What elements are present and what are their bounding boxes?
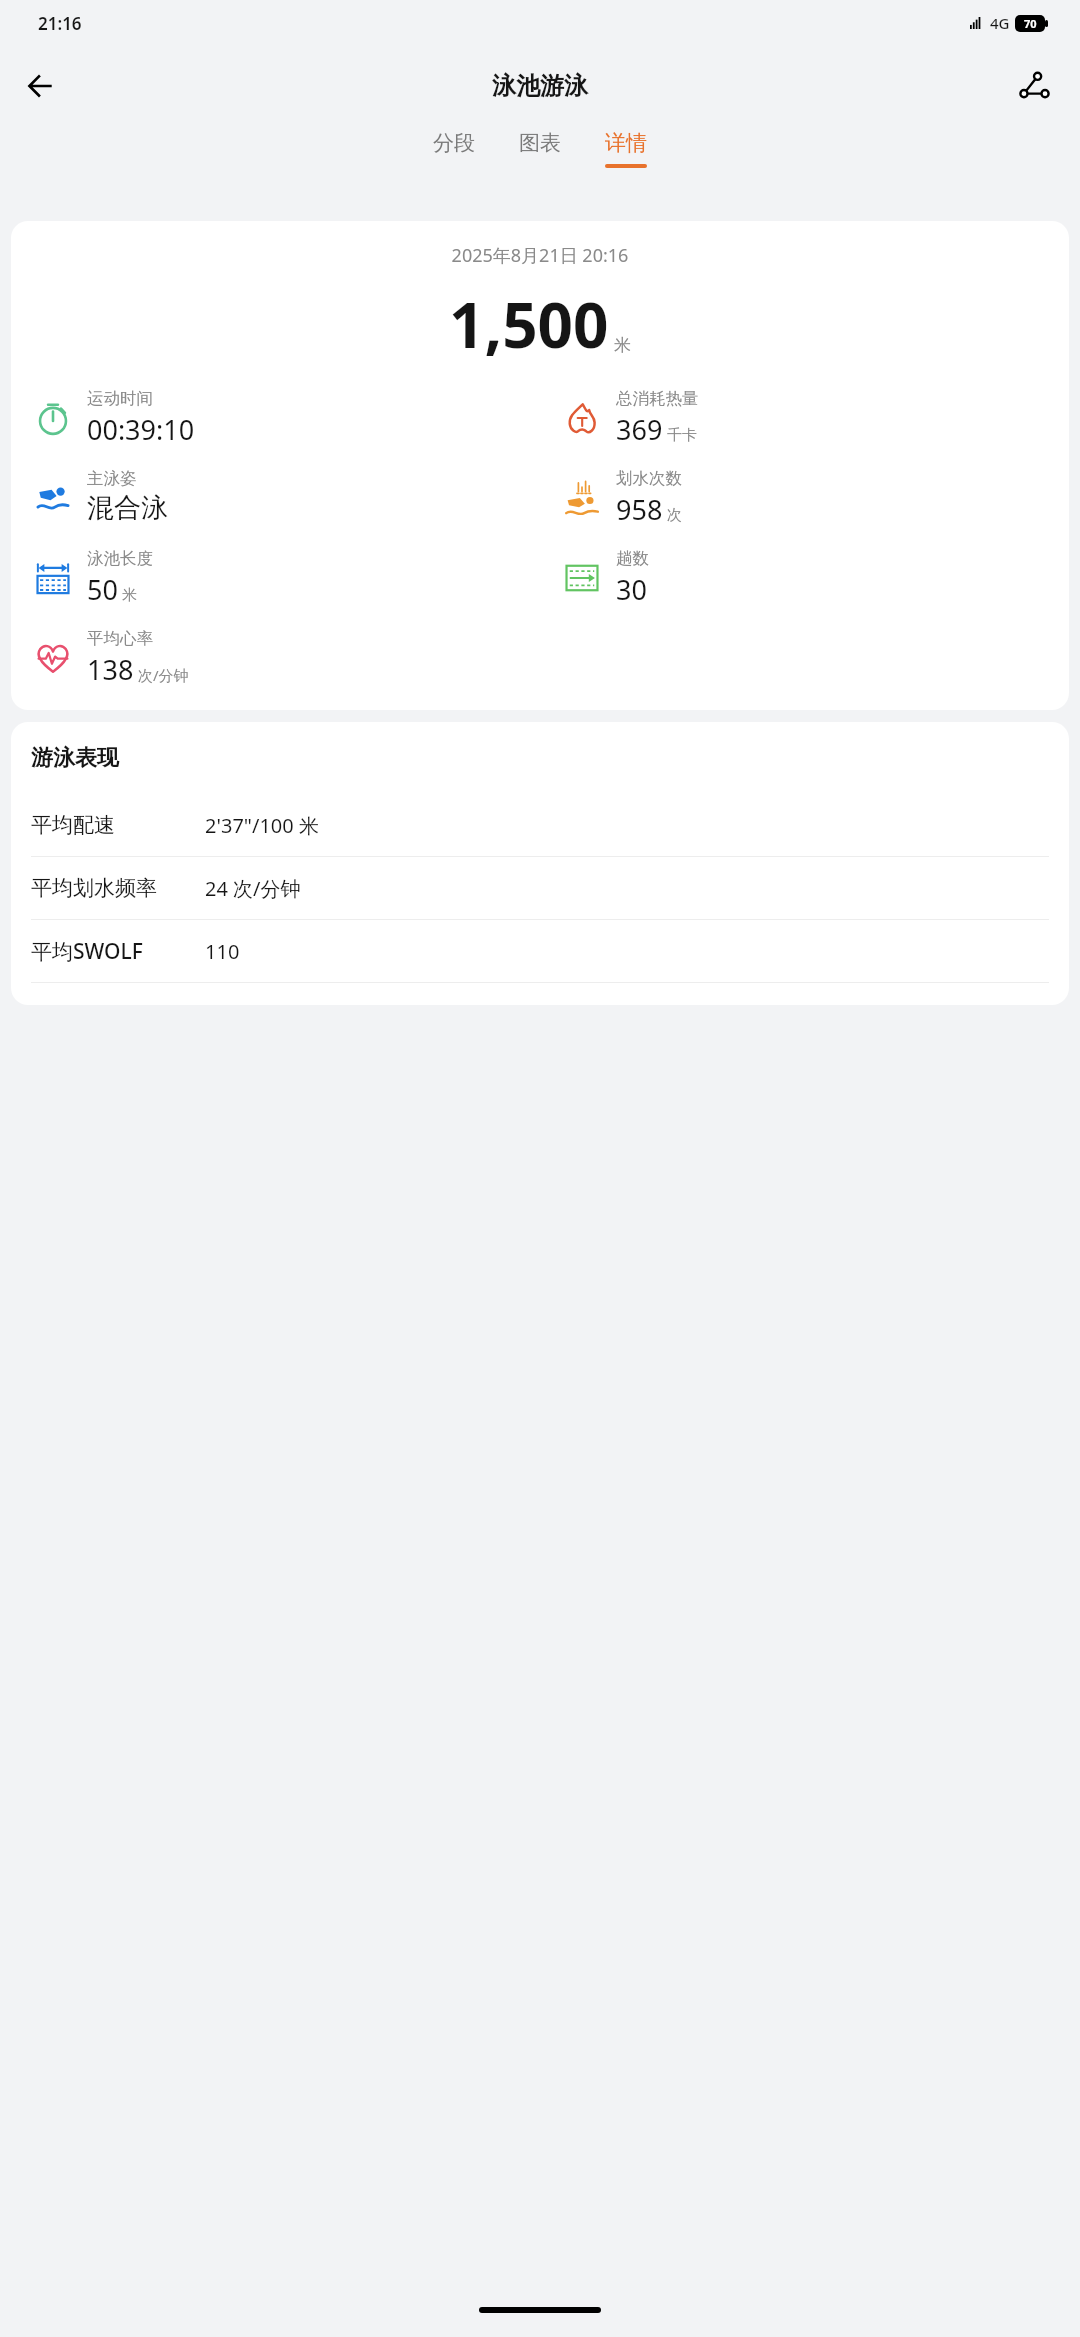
staticText: 369	[616, 411, 663, 448]
staticText: 游泳表现	[31, 744, 119, 772]
button[interactable]: Back	[14, 58, 70, 114]
button[interactable]: 总消耗热量	[540, 388, 1069, 448]
staticText: 主泳姿	[87, 468, 137, 489]
button[interactable]: 平均划水频率	[31, 857, 1049, 919]
staticText: 110	[205, 938, 240, 965]
button[interactable]: 平均心率	[11, 628, 540, 688]
staticText: 详情	[605, 130, 647, 156]
staticText: 平均配速	[31, 812, 205, 838]
staticText: 70	[1024, 16, 1037, 31]
button[interactable]: 主泳姿	[11, 468, 540, 525]
button[interactable]: 图表	[511, 126, 569, 172]
staticText: 21:16	[38, 12, 82, 35]
staticText: 24 次/分钟	[205, 875, 301, 902]
staticText: 4G	[990, 13, 1010, 33]
staticText: 分段	[433, 130, 475, 156]
staticText: 50	[87, 571, 118, 608]
staticText: 运动时间	[87, 388, 153, 409]
staticText: 1,500	[449, 282, 609, 366]
staticText: 次/分钟	[138, 665, 189, 685]
staticText: 泳池游泳	[492, 71, 588, 101]
staticText: 图表	[519, 130, 561, 156]
staticText: 958	[616, 491, 663, 528]
staticText: 平均SWOLF	[31, 937, 205, 966]
staticText: 划水次数	[616, 468, 682, 489]
staticText: 平均心率	[87, 628, 153, 649]
staticText: 次	[667, 506, 682, 525]
staticText: 米	[122, 586, 137, 605]
staticText: 平均划水频率	[31, 875, 205, 901]
staticText: 泳池长度	[87, 548, 153, 569]
button[interactable]: 泳池长度	[11, 548, 540, 608]
button[interactable]: Share	[1006, 58, 1062, 114]
staticText: 总消耗热量	[616, 388, 699, 409]
button[interactable]: 详情	[597, 126, 655, 172]
staticText: 2'37"/100 米	[205, 812, 319, 839]
staticText: 米	[614, 335, 631, 356]
button[interactable]: 分段	[425, 126, 483, 172]
staticText: 138	[87, 651, 134, 688]
staticText: 混合泳	[87, 491, 168, 525]
staticText: 趟数	[616, 548, 649, 569]
staticText: 30	[616, 571, 647, 608]
button[interactable]: 平均SWOLF	[31, 920, 1049, 982]
button[interactable]: 趟数	[540, 548, 1069, 608]
button[interactable]: 运动时间	[11, 388, 540, 448]
button[interactable]: 划水次数	[540, 468, 1069, 528]
staticText: 千卡	[667, 426, 697, 445]
staticText: 00:39:10	[87, 411, 195, 448]
button[interactable]: 平均配速	[31, 794, 1049, 856]
staticText: 2025年8月21日 20:16	[11, 243, 1069, 268]
